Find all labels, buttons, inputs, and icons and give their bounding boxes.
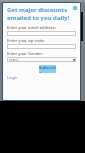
staticText: Enter your zip code: — [7, 38, 45, 43]
button[interactable]: Close — [73, 6, 77, 10]
staticText: Enter your Gender: — [7, 51, 44, 56]
button[interactable] — [7, 31, 76, 36]
staticText: emailed to you daily! — [7, 14, 70, 22]
staticText: Subscribe — [39, 65, 56, 73]
staticText: Enter your email address: — [7, 25, 56, 30]
button[interactable]: Login — [7, 75, 18, 80]
button[interactable] — [7, 44, 76, 49]
staticText: Login — [7, 75, 18, 80]
staticText: select — [9, 57, 19, 62]
button[interactable]: Subscribe — [39, 65, 56, 73]
staticText: Get major discounts — [7, 6, 68, 14]
button[interactable]: select — [7, 57, 76, 62]
